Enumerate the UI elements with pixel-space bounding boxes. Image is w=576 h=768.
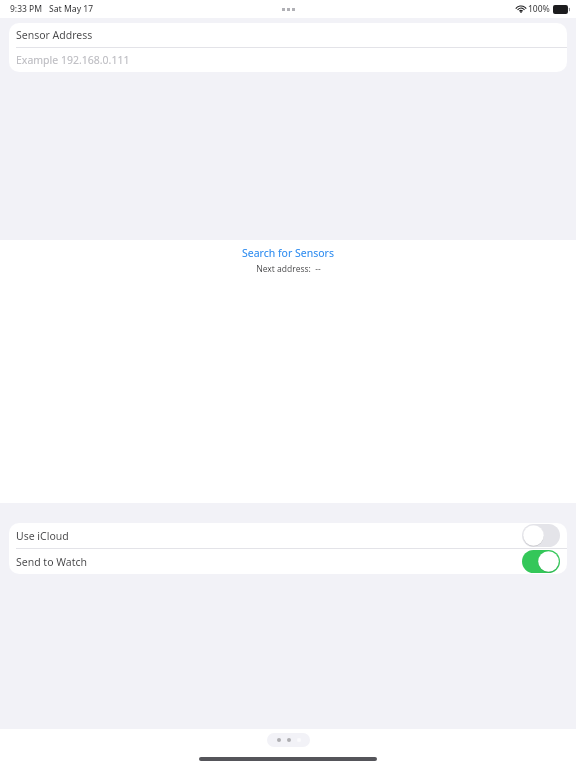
button[interactable]: On [522, 550, 560, 573]
staticText: Use iCloud [16, 529, 69, 543]
staticText: 100% [528, 3, 550, 15]
button[interactable]: Example 192.168.0.111 [9, 48, 567, 72]
staticText: Next address: -- [256, 263, 321, 275]
staticText: 9:33 PM [10, 3, 43, 15]
button[interactable]: Use iCloud [9, 523, 567, 548]
staticText: Sensor Address [16, 28, 93, 42]
staticText: Search for Sensors [242, 246, 334, 260]
button[interactable]: Search for Sensors [236, 245, 340, 261]
button[interactable]: Off [522, 524, 560, 547]
staticText: Sat May 17 [49, 3, 94, 15]
button[interactable]: Page indicator [267, 733, 310, 747]
staticText: Example 192.168.0.111 [16, 53, 130, 67]
staticText: Send to Watch [16, 555, 88, 569]
button[interactable]: Send to Watch [9, 549, 567, 574]
button[interactable]: Sensor Address [9, 23, 567, 47]
